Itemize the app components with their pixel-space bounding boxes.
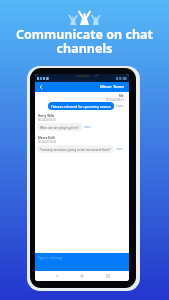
staticText: Me [119, 94, 124, 98]
staticText: Who are we playing first? [40, 125, 79, 129]
staticText: Marco Dalli [38, 136, 55, 140]
button[interactable]: Recents [104, 272, 112, 280]
button[interactable]: Back [53, 272, 61, 280]
staticText: 30-04-20 10:02 [38, 140, 56, 144]
button[interactable]: Back [38, 84, 44, 90]
staticText: more.. [84, 125, 92, 129]
staticText: more.. [116, 147, 124, 151]
staticText: 30-04-20 09:21 [38, 118, 56, 122]
button[interactable]: Type a message [35, 253, 129, 271]
staticText: Training sessions going to be increased … [40, 147, 111, 151]
button[interactable]: Fixtures released for upcoming season [48, 102, 114, 110]
staticText: Minor Team [100, 84, 124, 90]
staticText: Harry Wills [38, 114, 55, 118]
staticText: Communicate on chat channels [6, 26, 163, 57]
staticText: 30-04-20 09:15 [106, 98, 124, 102]
button[interactable]: Home [78, 272, 86, 280]
button[interactable]: Training sessions going to be increased … [37, 145, 114, 153]
staticText: Type a message [38, 255, 63, 259]
button[interactable]: Who are we playing first? [37, 123, 82, 131]
staticText: more.. [116, 104, 124, 108]
staticText: Fixtures released for upcoming season [51, 104, 111, 108]
